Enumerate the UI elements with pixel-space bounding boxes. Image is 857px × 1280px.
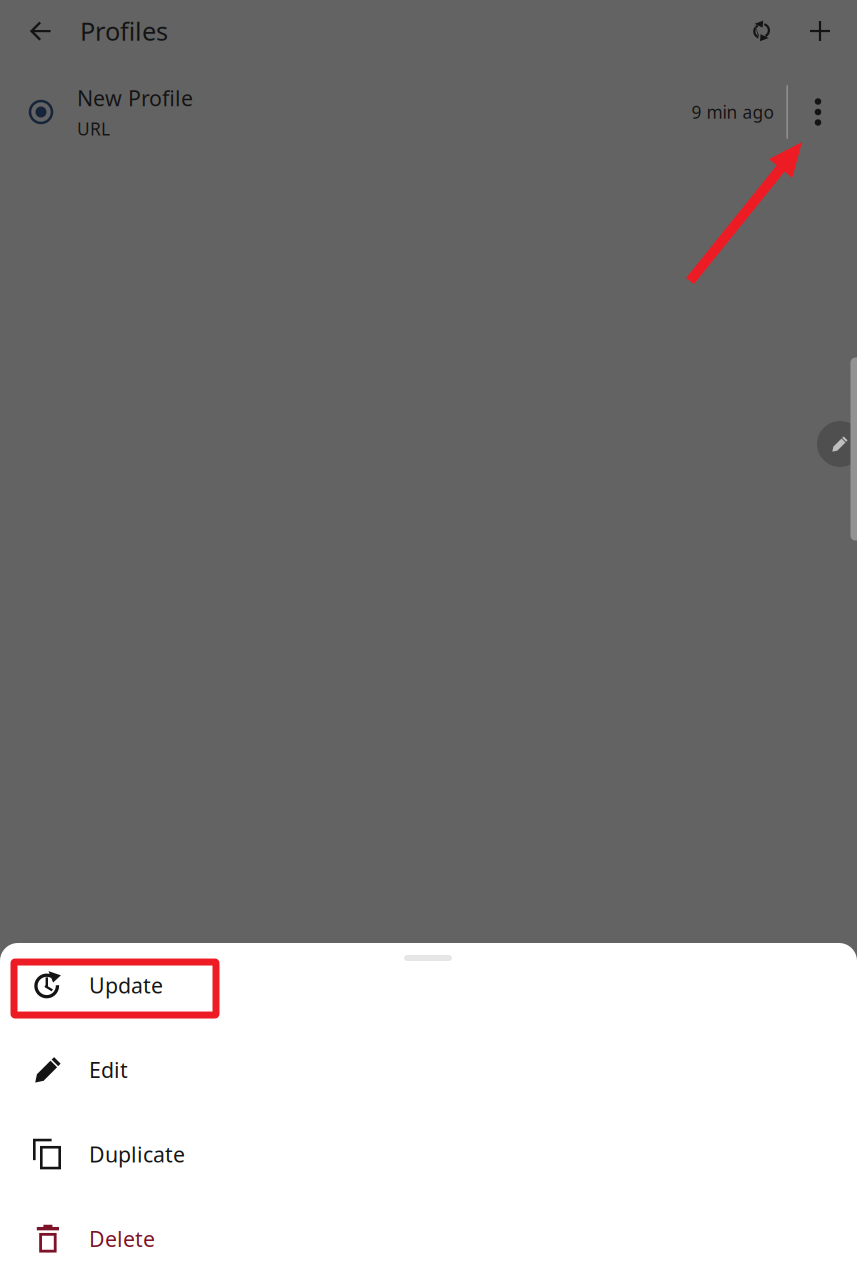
staticText: Profiles	[80, 14, 168, 48]
button[interactable]: Sync profiles	[733, 0, 791, 62]
staticText: Duplicate	[89, 1140, 185, 1168]
button[interactable]: Update	[0, 943, 857, 1027]
staticText: Delete	[89, 1225, 155, 1253]
button[interactable]: Delete	[0, 1196, 857, 1280]
button[interactable]: Add profile	[791, 0, 849, 62]
staticText: New Profile	[77, 84, 193, 112]
button[interactable]: Edit	[0, 1027, 857, 1112]
staticText: Update	[89, 971, 163, 999]
button[interactable]: Duplicate	[0, 1112, 857, 1196]
button[interactable]: Back	[12, 0, 68, 62]
button[interactable]: New Profile	[0, 62, 857, 162]
staticText: Edit	[89, 1056, 128, 1084]
button[interactable]: New profile	[817, 421, 857, 467]
staticText: URL	[77, 117, 110, 140]
staticText: 9 min ago	[691, 100, 773, 123]
